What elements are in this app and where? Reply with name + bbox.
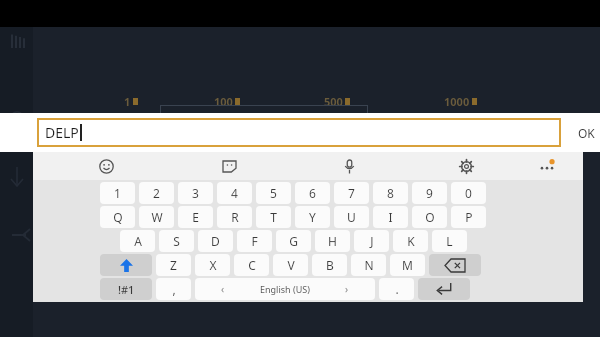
button[interactable]: I [373, 206, 408, 228]
staticText: 6 [309, 185, 316, 201]
staticText: 9 [426, 185, 433, 201]
staticText: , [172, 281, 176, 297]
staticText: 7 [348, 185, 355, 201]
staticText: J [370, 233, 374, 249]
staticText: 0 [465, 185, 472, 201]
button[interactable]: Settings [452, 152, 480, 180]
staticText: !#1 [118, 282, 135, 297]
button[interactable]: M [390, 254, 425, 276]
staticText: 3 [192, 185, 199, 201]
button[interactable]: V [273, 254, 308, 276]
button[interactable]: S [159, 230, 194, 252]
button[interactable]: P [451, 206, 486, 228]
button[interactable]: 3 [178, 182, 213, 204]
button[interactable]: 1 [100, 182, 135, 204]
button[interactable]: L [432, 230, 467, 252]
button[interactable]: Y [295, 206, 330, 228]
button[interactable]: English (US) [195, 278, 375, 300]
button[interactable]: 9 [412, 182, 447, 204]
button[interactable]: E [178, 206, 213, 228]
button[interactable]: X [195, 254, 230, 276]
staticText: 100 [214, 94, 233, 109]
button[interactable]: N [351, 254, 386, 276]
staticText: . [395, 281, 399, 297]
button[interactable]: 2 [139, 182, 174, 204]
button[interactable]: Backspace [429, 254, 481, 276]
button[interactable]: F [237, 230, 272, 252]
button[interactable]: , [156, 278, 191, 300]
staticText: DELP [45, 123, 79, 142]
staticText: Q [113, 209, 123, 225]
staticText: Z [170, 257, 177, 273]
staticText: 1 [114, 185, 121, 201]
button[interactable]: 0 [451, 182, 486, 204]
button[interactable]: Z [156, 254, 191, 276]
staticText: 500 [324, 94, 343, 109]
staticText: W [151, 209, 163, 225]
staticText: P [465, 209, 473, 225]
staticText: T [270, 209, 277, 225]
staticText: RENAME [244, 119, 284, 130]
staticText: I [388, 209, 393, 225]
button[interactable]: Shift [100, 254, 152, 276]
button[interactable]: . [379, 278, 414, 300]
staticText: E [192, 209, 199, 225]
staticText: D [211, 233, 220, 249]
staticText: 8 [387, 185, 394, 201]
staticText: 5 [270, 185, 277, 201]
staticText: › [345, 282, 349, 296]
staticText: M [402, 257, 413, 273]
staticText: U [347, 209, 356, 225]
button[interactable]: J [354, 230, 389, 252]
staticText: V [287, 257, 295, 273]
staticText: A [134, 233, 142, 249]
staticText: 1 [124, 94, 131, 109]
staticText: S [173, 233, 180, 249]
button[interactable]: A [120, 230, 155, 252]
staticText: F [251, 233, 258, 249]
button[interactable]: 4 [217, 182, 252, 204]
button[interactable]: 8 [373, 182, 408, 204]
button[interactable]: DELP [37, 118, 561, 147]
button[interactable]: Q [100, 206, 135, 228]
button[interactable]: Enter [418, 278, 470, 300]
button[interactable]: More options [533, 152, 561, 180]
staticText: K [407, 233, 415, 249]
staticText: N [364, 257, 374, 273]
button[interactable]: O [412, 206, 447, 228]
button[interactable]: 6 [295, 182, 330, 204]
staticText: C [248, 257, 256, 273]
button[interactable]: Voice input [335, 152, 363, 180]
button[interactable]: U [334, 206, 369, 228]
button[interactable]: C [234, 254, 269, 276]
staticText: ‹ [221, 282, 225, 296]
button[interactable]: R [217, 206, 252, 228]
button[interactable]: B [312, 254, 347, 276]
button[interactable]: 7 [334, 182, 369, 204]
button[interactable]: G [276, 230, 311, 252]
staticText: B [326, 257, 334, 273]
button[interactable]: Emoji [92, 152, 120, 180]
staticText: L [446, 233, 453, 249]
staticText: 4 [231, 185, 238, 201]
button[interactable]: T [256, 206, 291, 228]
staticText: OK [578, 125, 595, 141]
staticText: 2 [153, 185, 160, 201]
staticText: X [209, 257, 217, 273]
button[interactable]: K [393, 230, 428, 252]
button[interactable]: W [139, 206, 174, 228]
button[interactable]: Stickers [215, 152, 243, 180]
button[interactable]: 5 [256, 182, 291, 204]
staticText: 1000 [444, 94, 470, 109]
staticText: R [231, 209, 239, 225]
staticText: O [425, 209, 435, 225]
button[interactable]: H [315, 230, 350, 252]
staticText: H [328, 233, 337, 249]
staticText: English (US) [260, 283, 310, 295]
staticText: G [289, 233, 298, 249]
button[interactable]: D [198, 230, 233, 252]
button[interactable]: OK [575, 118, 597, 148]
staticText: Y [309, 209, 316, 225]
button[interactable]: !#1 [100, 278, 152, 300]
